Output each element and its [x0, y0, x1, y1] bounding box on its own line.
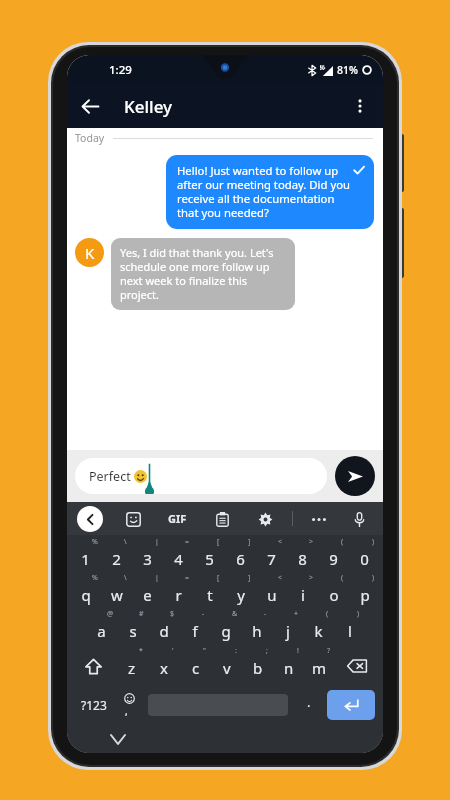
- staticText: \: [124, 573, 127, 583]
- staticText: u: [267, 585, 277, 605]
- button[interactable]: ?123: [73, 685, 114, 725]
- staticText: m: [312, 658, 327, 678]
- staticText: 1: [81, 549, 90, 569]
- staticText: p: [360, 585, 370, 605]
- staticText: \: [124, 537, 127, 547]
- staticText: ): [357, 609, 360, 619]
- button[interactable]: s: [117, 611, 148, 647]
- button[interactable]: K: [75, 238, 104, 267]
- staticText: ]: [248, 573, 251, 583]
- staticText: <: [278, 573, 283, 583]
- staticText: f: [192, 621, 198, 641]
- staticText: 81%: [337, 63, 358, 77]
- button[interactable]: 8: [287, 539, 318, 575]
- button[interactable]: Enter: [327, 690, 375, 720]
- staticText: 4: [174, 549, 183, 569]
- button[interactable]: 3: [132, 539, 163, 575]
- button[interactable]: 5: [194, 539, 225, 575]
- button[interactable]: Send: [335, 456, 375, 496]
- staticText: ?123: [81, 697, 107, 713]
- button[interactable]: j: [272, 611, 303, 647]
- staticText: !: [297, 646, 299, 656]
- button[interactable]: m: [304, 647, 335, 685]
- button[interactable]: t: [194, 575, 225, 611]
- staticText: @: [107, 609, 114, 619]
- button[interactable]: GIF: [165, 508, 190, 529]
- button[interactable]: 4: [163, 539, 194, 575]
- button[interactable]: l: [334, 611, 365, 647]
- staticText: v: [223, 658, 231, 678]
- button[interactable]: x: [148, 647, 180, 685]
- button[interactable]: z: [116, 647, 148, 685]
- button[interactable]: 9: [318, 539, 349, 575]
- button[interactable]: e: [132, 575, 163, 611]
- staticText: >: [309, 573, 314, 583]
- staticText: l: [348, 621, 352, 641]
- staticText: ': [172, 646, 174, 656]
- button[interactable]: Back: [73, 89, 107, 123]
- button[interactable]: Shift: [71, 647, 116, 685]
- button[interactable]: Stickers: [121, 507, 145, 531]
- button[interactable]: More options: [343, 89, 377, 123]
- button[interactable]: n: [273, 647, 304, 685]
- button[interactable]: o: [318, 575, 349, 611]
- staticText: w: [111, 585, 123, 605]
- button[interactable]: Voice input: [347, 507, 371, 531]
- staticText: .: [307, 693, 311, 711]
- button[interactable]: Backspace: [335, 647, 379, 685]
- staticText: 8: [298, 549, 307, 569]
- staticText: (: [341, 537, 344, 547]
- staticText: q: [81, 585, 91, 605]
- button[interactable]: 6: [225, 539, 256, 575]
- staticText: ]: [248, 537, 251, 547]
- staticText: g: [221, 621, 231, 641]
- staticText: z: [128, 658, 136, 678]
- button[interactable]: .: [292, 685, 325, 725]
- button[interactable]: c: [180, 647, 211, 685]
- staticText: (: [326, 609, 329, 619]
- button[interactable]: v: [211, 647, 242, 685]
- staticText: -: [202, 609, 205, 619]
- button[interactable]: h: [241, 611, 272, 647]
- staticText: >: [309, 537, 314, 547]
- staticText: <: [278, 537, 283, 547]
- staticText: k: [314, 621, 323, 641]
- button[interactable]: d: [148, 611, 179, 647]
- button[interactable]: Collapse toolbar: [77, 506, 103, 532]
- button[interactable]: 1: [70, 539, 101, 575]
- staticText: +: [294, 609, 299, 619]
- button[interactable]: Clipboard: [210, 507, 234, 531]
- staticText: Kelley: [124, 95, 173, 118]
- staticText: t: [207, 585, 213, 605]
- button[interactable]: w: [101, 575, 132, 611]
- button[interactable]: Hello! Just wanted to follow up after ou…: [166, 155, 374, 229]
- staticText: Today: [75, 131, 105, 145]
- button[interactable]: 0: [349, 539, 380, 575]
- button[interactable]: Perfect: [75, 458, 327, 494]
- button[interactable]: q: [70, 575, 101, 611]
- button[interactable]: u: [256, 575, 287, 611]
- button[interactable]: Yes, I did that thank you. Let's schedul…: [111, 238, 295, 310]
- staticText: %: [92, 537, 98, 547]
- button[interactable]: g: [210, 611, 241, 647]
- button[interactable]: i: [287, 575, 318, 611]
- staticText: e: [143, 585, 152, 605]
- button[interactable]: More: [308, 508, 330, 530]
- button[interactable]: 7: [256, 539, 287, 575]
- staticText: -: [264, 609, 267, 619]
- staticText: =: [185, 573, 190, 583]
- button[interactable]: f: [179, 611, 210, 647]
- button[interactable]: r: [163, 575, 194, 611]
- button[interactable]: a: [85, 611, 117, 647]
- button[interactable]: 2: [101, 539, 132, 575]
- button[interactable]: Emoji: [114, 685, 144, 725]
- button[interactable]: p: [349, 575, 380, 611]
- button[interactable]: k: [303, 611, 334, 647]
- staticText: r: [175, 585, 182, 605]
- staticText: h: [252, 621, 262, 641]
- staticText: 0: [360, 549, 369, 569]
- button[interactable]: b: [242, 647, 273, 685]
- button[interactable]: y: [225, 575, 256, 611]
- button[interactable]: Settings: [253, 507, 277, 531]
